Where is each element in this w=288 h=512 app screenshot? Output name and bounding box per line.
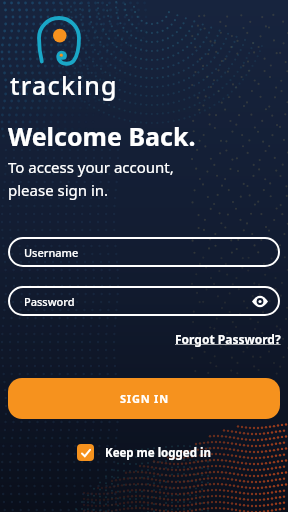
staticText: tracking xyxy=(10,68,118,102)
staticText: SIGN IN xyxy=(120,391,169,406)
button[interactable]: Keep me logged in xyxy=(77,444,211,461)
button[interactable]: Username xyxy=(8,237,280,267)
button[interactable]: Password xyxy=(8,286,280,316)
staticText: Username xyxy=(24,245,79,260)
staticText: Welcome Back. xyxy=(8,119,196,153)
staticText: Keep me logged in xyxy=(105,445,211,461)
button[interactable]: SIGN IN xyxy=(8,378,280,419)
staticText: To access your account, please sign in. xyxy=(8,157,174,201)
button[interactable]: Forgot Password? xyxy=(175,331,281,347)
staticText: Password xyxy=(24,294,75,309)
